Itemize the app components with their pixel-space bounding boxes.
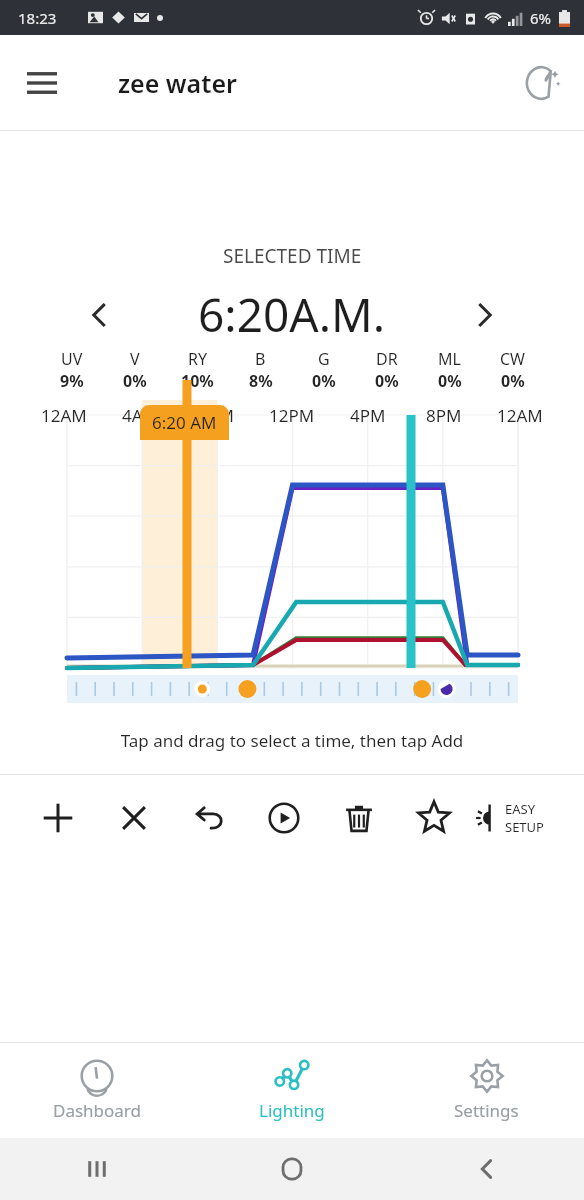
button[interactable]: Dashboard (0, 1043, 194, 1138)
button[interactable]: EASY (471, 775, 576, 860)
staticText: 4AM (122, 404, 159, 427)
staticText: zee water (118, 66, 237, 100)
staticText: 9% (60, 370, 84, 392)
button[interactable]: Recents (0, 1138, 194, 1200)
staticText: B (255, 348, 266, 370)
staticText: 6% (530, 8, 552, 28)
staticText: 10% (181, 370, 214, 392)
staticText: 4PM (350, 404, 386, 427)
button[interactable]: Home (194, 1138, 389, 1200)
button[interactable]: Previous time (76, 292, 122, 338)
staticText: Dashboard (53, 1099, 142, 1122)
staticText: DR (376, 348, 398, 370)
button[interactable]: Play (246, 775, 321, 860)
staticText: SELECTED TIME (223, 243, 362, 269)
staticText: 0% (312, 370, 336, 392)
button[interactable]: Delete (321, 775, 396, 860)
button[interactable]: Night mode (514, 55, 570, 111)
staticText: 8PM (426, 404, 462, 427)
staticText: EASY (505, 800, 536, 818)
staticText: Settings (454, 1099, 519, 1122)
staticText: 0% (501, 370, 525, 392)
staticText: G (318, 348, 330, 370)
button[interactable]: Menu (14, 55, 70, 111)
staticText: 8% (249, 370, 273, 392)
staticText: RY (188, 348, 208, 370)
staticText: SETUP (505, 818, 544, 836)
staticText: 18:23 (18, 8, 57, 28)
button[interactable]: Add (20, 775, 96, 860)
staticText: 0% (375, 370, 399, 392)
button[interactable]: Next time (462, 292, 508, 338)
staticText: 6:20 AM (152, 411, 217, 434)
staticText: CW (500, 348, 525, 370)
staticText: 12AM (41, 404, 87, 427)
staticText: 6:20A.M. (198, 283, 386, 346)
button[interactable]: Lighting (194, 1043, 389, 1138)
staticText: V (130, 348, 140, 370)
staticText: UV (61, 348, 83, 370)
staticText: 8AM (198, 404, 235, 427)
staticText: 12AM (497, 404, 543, 427)
button[interactable]: Favorite (396, 775, 471, 860)
staticText: ML (438, 348, 461, 370)
staticText: 12PM (269, 404, 315, 427)
staticText: Tap and drag to select a time, then tap … (0, 729, 584, 752)
button[interactable]: Back (389, 1138, 584, 1200)
button[interactable]: Undo (171, 775, 246, 860)
button[interactable]: 6:20 AM (152, 411, 217, 434)
button[interactable]: Settings (389, 1043, 584, 1138)
staticText: 0% (123, 370, 147, 392)
staticText: Lighting (259, 1099, 325, 1122)
staticText: 0% (438, 370, 462, 392)
button[interactable]: Cancel (96, 775, 171, 860)
